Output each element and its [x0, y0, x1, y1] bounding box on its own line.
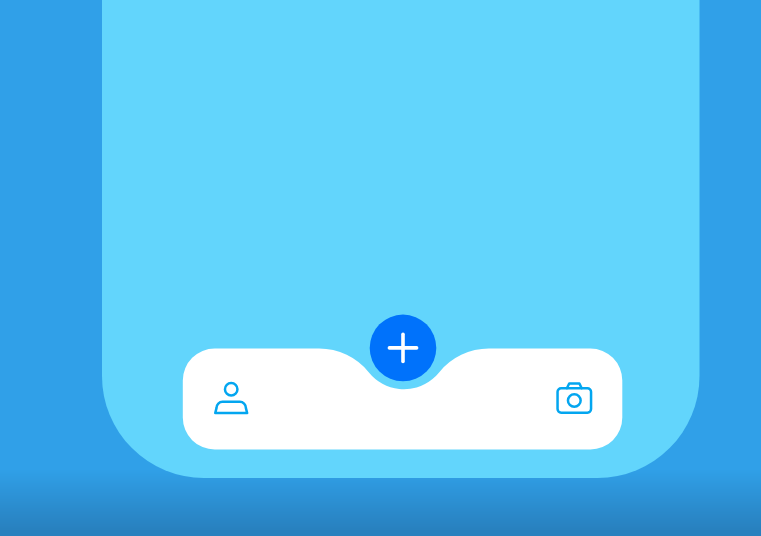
button[interactable]: Profile	[183, 349, 358, 450]
button[interactable]: Camera	[448, 349, 622, 450]
button[interactable]: Add	[370, 315, 437, 382]
